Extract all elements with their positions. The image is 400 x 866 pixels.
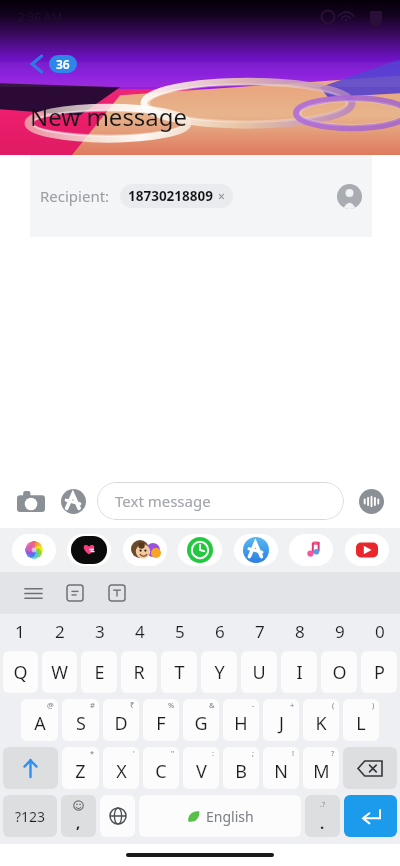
staticText: * bbox=[90, 748, 95, 758]
staticText: B bbox=[235, 759, 247, 784]
button[interactable]: App Store apps bbox=[58, 486, 88, 516]
button[interactable]: 1 bbox=[0, 614, 40, 648]
button[interactable]: W bbox=[42, 651, 77, 693]
button[interactable]: .? bbox=[305, 795, 340, 837]
button[interactable]: ? bbox=[303, 747, 339, 789]
staticText: T bbox=[174, 660, 185, 685]
staticText: New message bbox=[30, 100, 188, 133]
staticText: V bbox=[196, 759, 207, 784]
button[interactable]: English bbox=[139, 795, 301, 837]
staticText: " bbox=[171, 748, 175, 758]
button[interactable]: " bbox=[143, 747, 179, 789]
button[interactable]: Q bbox=[3, 651, 38, 693]
button[interactable]: * bbox=[62, 747, 99, 789]
button[interactable]: 2 bbox=[40, 614, 80, 648]
staticText: 18730218809 bbox=[128, 187, 213, 205]
button[interactable]: Shift bbox=[3, 747, 58, 789]
button[interactable]: R bbox=[121, 651, 157, 693]
button[interactable]: E bbox=[81, 651, 117, 693]
button[interactable]: Music bbox=[289, 534, 333, 566]
button[interactable]: Back, 36 unread bbox=[26, 50, 81, 78]
staticText: ; bbox=[252, 748, 255, 758]
button[interactable]: Change language bbox=[100, 795, 135, 837]
button[interactable]: T bbox=[161, 651, 197, 693]
staticText: X bbox=[116, 759, 127, 784]
staticText: W bbox=[51, 660, 68, 685]
staticText: ! bbox=[292, 748, 295, 758]
staticText: L bbox=[356, 711, 366, 736]
button[interactable]: U bbox=[241, 651, 277, 693]
staticText: @ bbox=[47, 700, 54, 710]
button[interactable]: Record audio bbox=[356, 486, 386, 516]
button[interactable]: 7 bbox=[240, 614, 280, 648]
staticText: G bbox=[194, 711, 208, 736]
button[interactable]: 3 bbox=[80, 614, 120, 648]
button[interactable]: 4 bbox=[120, 614, 160, 648]
button[interactable]: - bbox=[223, 699, 259, 741]
staticText: Recipient: bbox=[40, 186, 110, 206]
button[interactable]: Fitness bbox=[67, 534, 111, 566]
staticText: + bbox=[290, 700, 295, 710]
button[interactable]: 0 bbox=[360, 614, 400, 648]
staticText: Z bbox=[75, 759, 86, 784]
button[interactable]: P bbox=[361, 651, 397, 693]
staticText: 2:36 AM bbox=[18, 9, 62, 25]
button[interactable]: Backspace bbox=[343, 747, 397, 789]
staticText: , bbox=[76, 812, 81, 832]
staticText: . bbox=[320, 813, 325, 833]
button[interactable]: Clipboard bbox=[58, 576, 92, 610]
staticText: 0 bbox=[375, 620, 385, 643]
button[interactable]: Text message bbox=[97, 482, 344, 520]
button[interactable]: Memoji bbox=[123, 534, 167, 566]
staticText: A bbox=[34, 711, 46, 736]
staticText: H bbox=[234, 711, 248, 736]
button[interactable]: ; bbox=[223, 747, 259, 789]
staticText: 1 bbox=[15, 620, 25, 643]
button[interactable]: & bbox=[183, 699, 219, 741]
staticText: ( bbox=[332, 700, 335, 710]
button[interactable]: Photos bbox=[12, 534, 56, 566]
button[interactable]: # bbox=[62, 699, 99, 741]
button[interactable]: ( bbox=[303, 699, 339, 741]
button[interactable]: @ bbox=[21, 699, 58, 741]
button[interactable]: Y bbox=[201, 651, 237, 693]
staticText: D bbox=[114, 711, 128, 736]
button[interactable]: ?123 bbox=[3, 795, 57, 837]
button[interactable]: I bbox=[281, 651, 317, 693]
button[interactable]: Text formatting bbox=[100, 576, 134, 610]
staticText: 2 bbox=[55, 620, 65, 643]
button[interactable]: ' bbox=[103, 747, 139, 789]
button[interactable]: Add contact bbox=[337, 184, 362, 209]
button[interactable]: Comma, emoji bbox=[61, 795, 96, 837]
button[interactable]: Clock bbox=[178, 534, 222, 566]
button[interactable]: : bbox=[183, 747, 219, 789]
staticText: 3 bbox=[95, 620, 105, 643]
button[interactable]: O bbox=[321, 651, 357, 693]
staticText: Q bbox=[13, 660, 28, 685]
button[interactable]: ! bbox=[263, 747, 299, 789]
button[interactable]: ₹ bbox=[103, 699, 139, 741]
button[interactable]: App Store bbox=[234, 534, 278, 566]
button[interactable]: 8 bbox=[280, 614, 320, 648]
button[interactable]: Menu bbox=[16, 576, 50, 610]
staticText: R bbox=[133, 660, 145, 685]
staticText: English bbox=[206, 807, 254, 826]
staticText: E bbox=[94, 660, 105, 685]
button[interactable]: 18730218809 bbox=[120, 184, 233, 208]
staticText: S bbox=[76, 711, 86, 736]
button[interactable]: Recipient: bbox=[30, 155, 372, 237]
staticText: K bbox=[315, 711, 327, 736]
button[interactable]: 5 bbox=[160, 614, 200, 648]
button[interactable]: 9 bbox=[320, 614, 360, 648]
staticText: N bbox=[274, 759, 288, 784]
button[interactable]: + bbox=[263, 699, 299, 741]
button[interactable]: Enter bbox=[344, 795, 397, 837]
button[interactable]: % bbox=[143, 699, 179, 741]
button[interactable]: Camera bbox=[14, 484, 48, 518]
button[interactable]: YouTube bbox=[345, 534, 389, 566]
button[interactable]: 6 bbox=[200, 614, 240, 648]
staticText: .? bbox=[320, 800, 325, 810]
staticText: 5 bbox=[175, 620, 185, 643]
button[interactable]: ) bbox=[343, 699, 379, 741]
staticText: 36 bbox=[56, 56, 70, 72]
